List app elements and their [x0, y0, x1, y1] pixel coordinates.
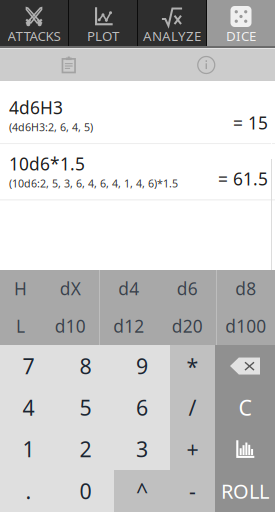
- staticText: PLOT: [87, 27, 119, 45]
- staticText: d6: [177, 277, 198, 300]
- button[interactable]: 1: [0, 428, 57, 470]
- button[interactable]: 6: [114, 387, 170, 428]
- button[interactable]: 2: [57, 428, 114, 470]
- staticText: 2: [79, 435, 91, 463]
- button[interactable]: /: [170, 387, 215, 428]
- staticText: 4: [22, 393, 34, 422]
- staticText: = 61.5: [218, 167, 268, 190]
- button[interactable]: d6: [158, 270, 216, 307]
- staticText: d10: [55, 314, 86, 337]
- button[interactable]: .: [0, 470, 57, 512]
- button[interactable]: d10: [41, 307, 99, 345]
- button[interactable]: Clear: [215, 387, 275, 428]
- button[interactable]: 0: [57, 470, 114, 512]
- staticText: 9: [136, 352, 148, 380]
- staticText: d12: [113, 314, 144, 337]
- button[interactable]: ANALYZE: [138, 0, 206, 46]
- staticText: -: [189, 477, 196, 505]
- staticText: +: [186, 435, 198, 463]
- staticText: d100: [225, 314, 266, 337]
- button[interactable]: DICE: [207, 0, 275, 46]
- button[interactable]: *: [170, 345, 215, 387]
- staticText: ANALYZE: [143, 27, 201, 45]
- staticText: *: [186, 352, 198, 380]
- button[interactable]: Backspace: [215, 345, 275, 387]
- button[interactable]: 4: [0, 387, 57, 428]
- button[interactable]: PLOT: [69, 0, 137, 46]
- staticText: (4d6H3:2, 6, 4, 5): [9, 120, 93, 134]
- staticText: 1: [22, 435, 34, 463]
- button[interactable]: Roll: [215, 470, 275, 512]
- button[interactable]: ATTACKS: [0, 0, 68, 46]
- staticText: 6: [136, 393, 148, 422]
- button[interactable]: ^: [114, 470, 170, 512]
- staticText: ROLL: [221, 478, 269, 504]
- button[interactable]: d4: [99, 270, 158, 307]
- staticText: 3: [136, 435, 148, 463]
- button[interactable]: Info: [137, 49, 275, 81]
- staticText: C: [238, 393, 251, 422]
- staticText: 8: [79, 352, 91, 380]
- staticText: 0: [79, 477, 91, 505]
- button[interactable]: 5: [57, 387, 114, 428]
- staticText: /: [188, 393, 196, 422]
- staticText: d20: [172, 314, 203, 337]
- button[interactable]: d100: [216, 307, 275, 345]
- staticText: 10d6*1.5: [9, 152, 85, 175]
- staticText: 7: [22, 352, 34, 380]
- staticText: DICE: [226, 27, 256, 45]
- button[interactable]: 3: [114, 428, 170, 470]
- staticText: .: [25, 477, 31, 505]
- button[interactable]: L: [0, 307, 41, 345]
- button[interactable]: 9: [114, 345, 170, 387]
- staticText: L: [16, 314, 25, 337]
- staticText: 4d6H3: [9, 96, 63, 119]
- button[interactable]: d8: [216, 270, 275, 307]
- button[interactable]: d20: [158, 307, 216, 345]
- staticText: H: [14, 277, 27, 300]
- button[interactable]: 4d6H3: [0, 88, 275, 143]
- staticText: dX: [60, 277, 81, 300]
- staticText: ATTACKS: [7, 27, 60, 45]
- button[interactable]: -: [170, 470, 215, 512]
- staticText: = 15: [233, 111, 268, 134]
- button[interactable]: +: [170, 428, 215, 470]
- staticText: d8: [235, 277, 256, 300]
- button[interactable]: 8: [57, 345, 114, 387]
- button[interactable]: 10d6*1.5: [0, 144, 275, 199]
- button[interactable]: dX: [41, 270, 99, 307]
- staticText: ^: [136, 477, 148, 505]
- button[interactable]: H: [0, 270, 41, 307]
- staticText: 5: [79, 393, 91, 422]
- staticText: (10d6:2, 5, 3, 6, 4, 6, 4, 1, 4, 6)*1.5: [9, 176, 178, 190]
- button[interactable]: Notes: [0, 49, 137, 81]
- staticText: d4: [118, 277, 139, 300]
- button[interactable]: 7: [0, 345, 57, 387]
- button[interactable]: Statistics: [215, 428, 275, 470]
- button[interactable]: d12: [99, 307, 158, 345]
